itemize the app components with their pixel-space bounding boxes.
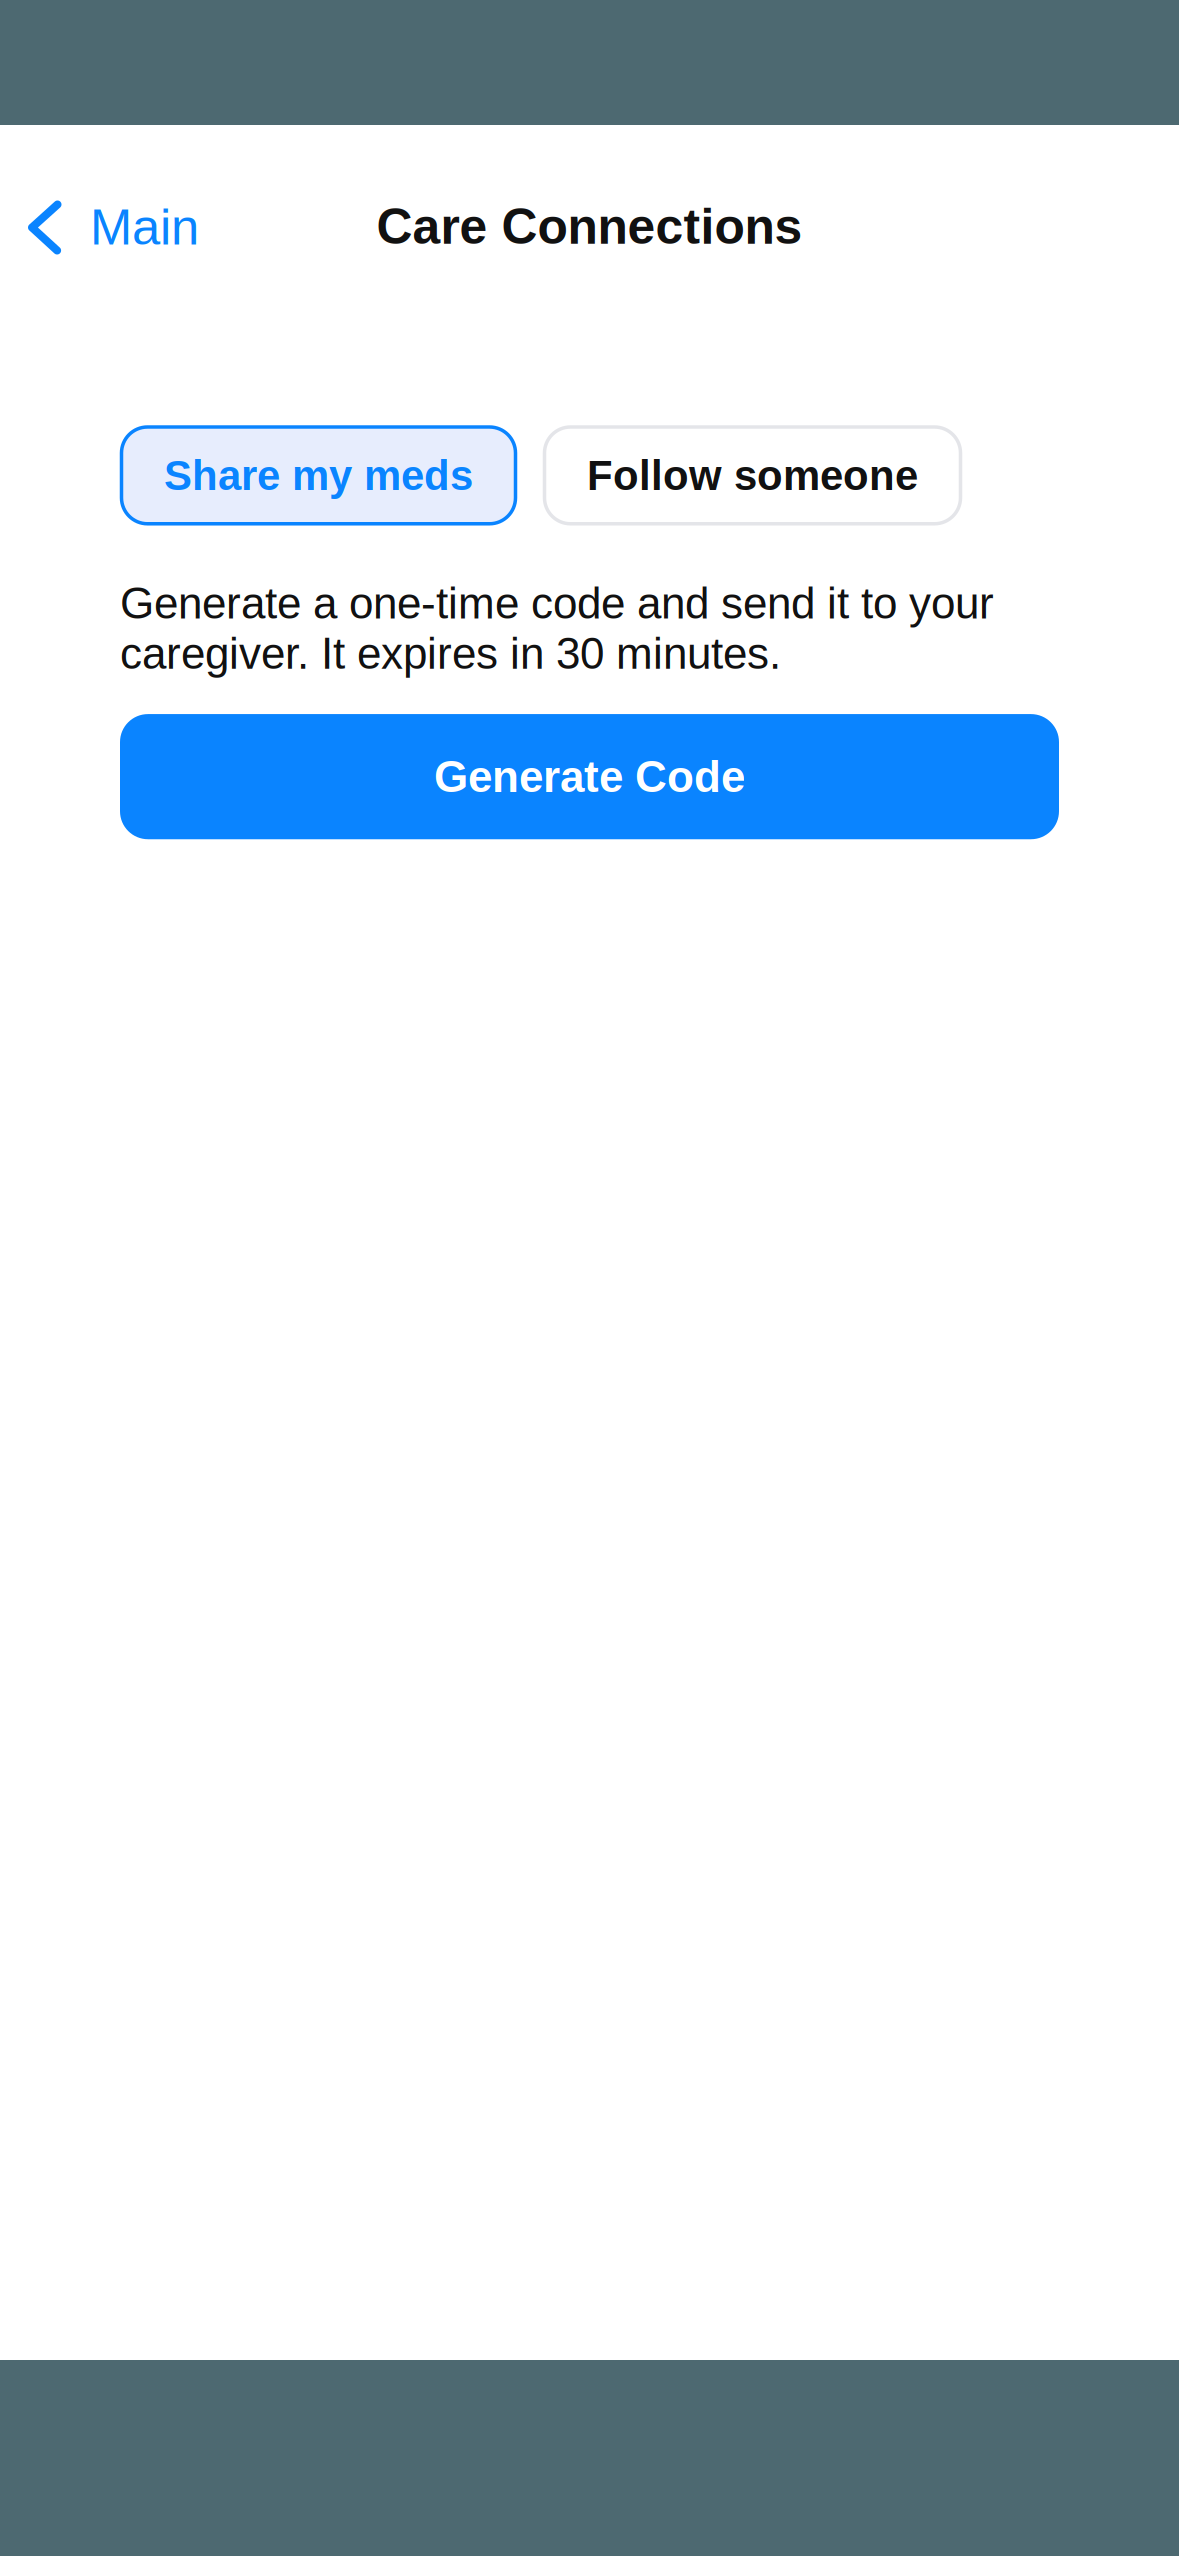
staticText: Main — [90, 199, 199, 255]
staticText: Generate Code — [434, 752, 745, 801]
staticText: Care Connections — [376, 199, 802, 254]
button[interactable]: Back to Main — [0, 169, 219, 277]
staticText: Generate a one-time code and send it to … — [120, 579, 994, 678]
button[interactable]: Share my meds — [121, 427, 515, 524]
staticText: Share my meds — [164, 452, 473, 499]
staticText: Follow someone — [587, 452, 918, 499]
button[interactable]: Follow someone — [544, 427, 960, 524]
button[interactable]: Generate Code — [120, 714, 1059, 839]
